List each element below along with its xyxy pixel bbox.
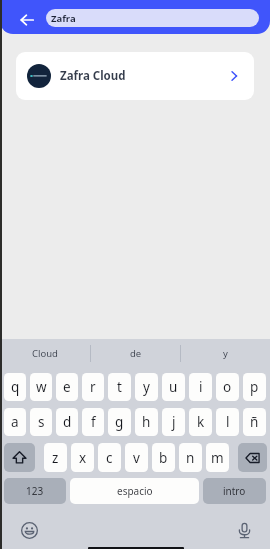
staticText: de bbox=[130, 347, 142, 360]
staticText: o bbox=[223, 378, 232, 396]
button[interactable]: h bbox=[135, 408, 158, 436]
button[interactable]: t bbox=[108, 373, 131, 401]
staticText: z bbox=[52, 449, 59, 467]
staticText: Cloud bbox=[32, 347, 58, 360]
staticText: i bbox=[199, 378, 203, 396]
button[interactable]: n bbox=[179, 443, 202, 472]
staticText: t bbox=[117, 378, 122, 396]
staticText: v bbox=[133, 449, 140, 467]
button[interactable]: Back bbox=[0, 0, 46, 34]
staticText: m bbox=[211, 449, 224, 467]
button[interactable]: o bbox=[216, 373, 239, 401]
staticText: b bbox=[159, 449, 168, 467]
button[interactable]: l bbox=[216, 408, 239, 436]
button[interactable]: c bbox=[98, 443, 121, 472]
button[interactable]: w bbox=[30, 373, 52, 401]
staticText: espacio bbox=[117, 484, 153, 498]
button[interactable]: x bbox=[71, 443, 94, 472]
staticText: w bbox=[36, 378, 47, 396]
button[interactable]: ñ bbox=[243, 408, 266, 436]
button[interactable]: Zafra bbox=[46, 9, 259, 27]
button[interactable]: q bbox=[4, 373, 26, 401]
button[interactable]: Voice input bbox=[235, 521, 253, 539]
staticText: g bbox=[115, 413, 124, 431]
button[interactable]: m bbox=[206, 443, 229, 472]
staticText: intro bbox=[223, 484, 246, 498]
staticText: n bbox=[186, 449, 195, 467]
staticText: y bbox=[223, 347, 228, 360]
button[interactable]: u bbox=[162, 373, 185, 401]
button[interactable]: i bbox=[189, 373, 212, 401]
button[interactable]: j bbox=[162, 408, 185, 436]
button[interactable]: s bbox=[30, 408, 52, 436]
button[interactable]: Shift bbox=[4, 443, 35, 472]
staticText: ñ bbox=[250, 413, 259, 431]
staticText: x bbox=[79, 449, 87, 467]
button[interactable]: 123 bbox=[4, 478, 66, 504]
staticText: c bbox=[106, 449, 113, 467]
button[interactable]: d bbox=[56, 408, 78, 436]
staticText: 123 bbox=[26, 484, 44, 498]
staticText: e bbox=[63, 378, 71, 396]
staticText: r bbox=[90, 378, 96, 396]
staticText: y bbox=[143, 378, 150, 396]
staticText: j bbox=[172, 413, 176, 431]
button[interactable]: r bbox=[82, 373, 104, 401]
button[interactable]: y bbox=[181, 339, 270, 368]
staticText: a bbox=[11, 413, 19, 431]
button[interactable]: f bbox=[82, 408, 104, 436]
button[interactable]: p bbox=[243, 373, 266, 401]
button[interactable]: k bbox=[189, 408, 212, 436]
staticText: p bbox=[250, 378, 259, 396]
button[interactable]: z bbox=[44, 443, 67, 472]
button[interactable]: e bbox=[56, 373, 78, 401]
button[interactable]: g bbox=[108, 408, 131, 436]
button[interactable]: Zafra Cloud bbox=[16, 52, 254, 100]
button[interactable]: b bbox=[152, 443, 175, 472]
staticText: k bbox=[197, 413, 205, 431]
staticText: s bbox=[38, 413, 45, 431]
staticText: q bbox=[11, 378, 20, 396]
button[interactable]: Backspace bbox=[238, 443, 267, 472]
button[interactable]: y bbox=[135, 373, 158, 401]
button[interactable]: de bbox=[91, 339, 180, 368]
staticText: l bbox=[226, 413, 230, 431]
staticText: Zafra Cloud bbox=[60, 68, 126, 84]
staticText: h bbox=[142, 413, 151, 431]
button[interactable]: Cloud bbox=[0, 339, 90, 368]
button[interactable]: intro bbox=[203, 478, 266, 504]
button[interactable]: a bbox=[4, 408, 26, 436]
staticText: f bbox=[91, 413, 96, 431]
button[interactable]: espacio bbox=[70, 478, 199, 504]
staticText: u bbox=[169, 378, 178, 396]
staticText: d bbox=[63, 413, 72, 431]
staticText: Zafra bbox=[51, 12, 76, 25]
button[interactable]: Emoji bbox=[20, 521, 38, 539]
button[interactable]: v bbox=[125, 443, 148, 472]
